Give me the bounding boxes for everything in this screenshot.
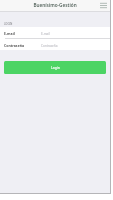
button[interactable]: Menu xyxy=(99,1,107,9)
button[interactable]: E-mail xyxy=(0,27,110,38)
staticText: Buenísimo-Gestión xyxy=(33,2,77,8)
staticText: LOGIN xyxy=(4,22,13,26)
staticText: E-mail xyxy=(4,31,41,36)
staticText: Contraseña xyxy=(4,43,41,48)
button[interactable]: Login xyxy=(4,61,106,74)
staticText: E-mail xyxy=(41,32,50,36)
button[interactable]: Contraseña xyxy=(0,39,110,50)
staticText: Login xyxy=(51,65,60,70)
staticText: Contraseña xyxy=(41,44,58,48)
